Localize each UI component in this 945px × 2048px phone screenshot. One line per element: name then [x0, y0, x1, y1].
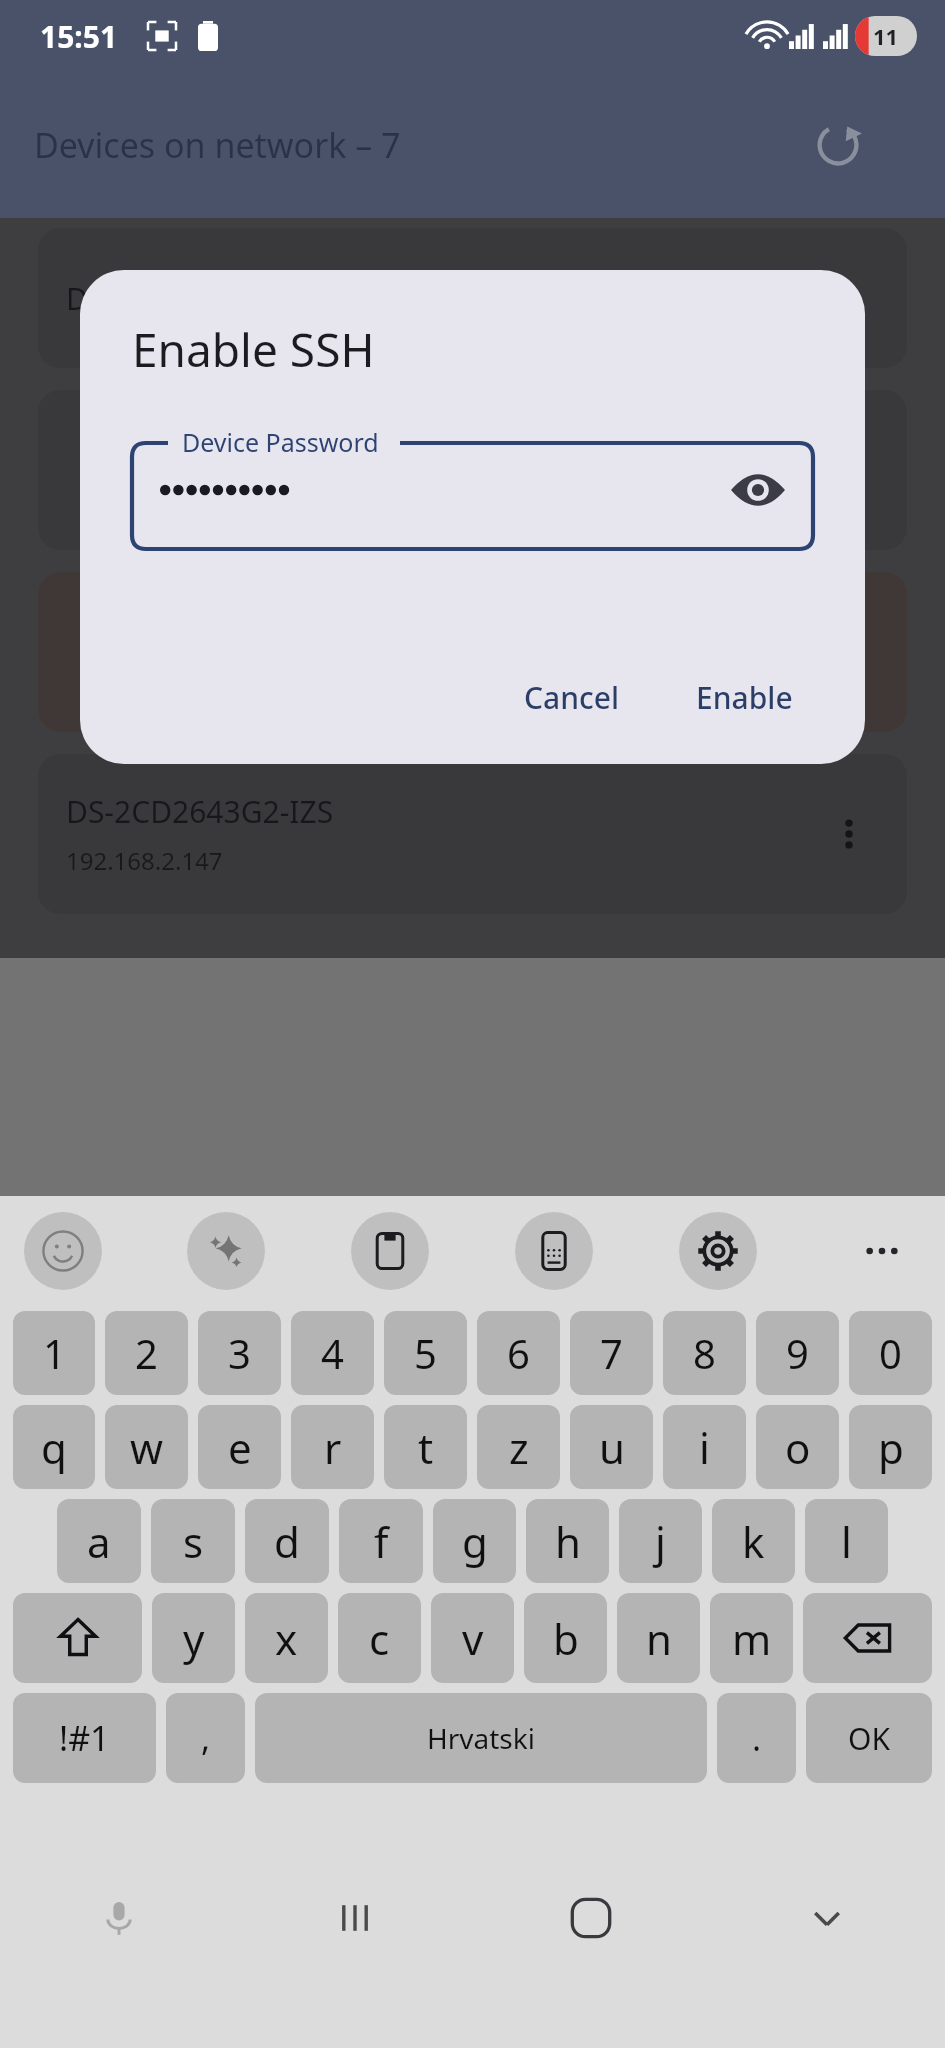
button[interactable]: l: [805, 1499, 888, 1583]
button[interactable]: OK: [806, 1693, 932, 1783]
button[interactable]: !#1: [13, 1693, 156, 1783]
staticText: k: [742, 1513, 765, 1570]
button[interactable]: 9: [756, 1311, 839, 1395]
button[interactable]: n: [617, 1593, 700, 1683]
staticText: 15:51: [40, 16, 118, 57]
staticText: 6: [507, 1326, 530, 1380]
button[interactable]: Show password: [721, 453, 795, 527]
staticText: p: [878, 1419, 904, 1476]
staticText: z: [509, 1419, 529, 1476]
button[interactable]: Enable: [676, 665, 813, 730]
button[interactable]: w: [105, 1405, 188, 1489]
button[interactable]: d: [245, 1499, 329, 1583]
staticText: 1: [43, 1326, 66, 1380]
staticText: 8: [693, 1326, 716, 1380]
button[interactable]: v: [431, 1593, 514, 1683]
button[interactable]: Recent apps: [237, 1788, 473, 2048]
button[interactable]: m: [710, 1593, 793, 1683]
button[interactable]: More options: [819, 804, 879, 864]
button[interactable]: 0: [849, 1311, 932, 1395]
staticText: q: [41, 1419, 67, 1476]
staticText: t: [418, 1419, 434, 1476]
button[interactable]: 5: [384, 1311, 467, 1395]
staticText: s: [183, 1513, 204, 1570]
button[interactable]: k: [712, 1499, 795, 1583]
button[interactable]: r: [291, 1405, 374, 1489]
button[interactable]: Home: [473, 1788, 709, 2048]
button[interactable]: e: [198, 1405, 281, 1489]
button[interactable]: b: [524, 1593, 607, 1683]
button[interactable]: Key: [803, 1593, 932, 1683]
button[interactable]: g: [433, 1499, 516, 1583]
staticText: o: [785, 1419, 811, 1476]
button[interactable]: p: [849, 1405, 932, 1489]
button[interactable]: Keyboard tool: [24, 1212, 102, 1290]
button[interactable]: c: [338, 1593, 421, 1683]
button[interactable]: t: [384, 1405, 467, 1489]
button[interactable]: Keyboard tool: [351, 1212, 429, 1290]
button[interactable]: .: [717, 1693, 796, 1783]
button[interactable]: h: [526, 1499, 609, 1583]
button[interactable]: u: [570, 1405, 653, 1489]
staticText: .: [752, 1715, 762, 1761]
button[interactable]: i: [663, 1405, 746, 1489]
button[interactable]: j: [619, 1499, 702, 1583]
staticText: d: [274, 1513, 300, 1570]
button[interactable]: 1: [13, 1311, 95, 1395]
button[interactable]: o: [756, 1405, 839, 1489]
button[interactable]: 8: [663, 1311, 746, 1395]
button[interactable]: 6: [477, 1311, 560, 1395]
staticText: !#1: [59, 1715, 110, 1761]
staticText: Enable SSH: [132, 318, 375, 381]
staticText: DS-2CD2643G2-IZS: [66, 791, 334, 832]
staticText: Hrvatski: [427, 1719, 535, 1757]
staticText: Enable: [696, 677, 793, 718]
button[interactable]: ,: [166, 1693, 245, 1783]
button[interactable]: Cancel: [504, 665, 640, 730]
staticText: ,: [201, 1715, 211, 1761]
button[interactable]: 7: [570, 1311, 653, 1395]
button[interactable]: x: [245, 1593, 328, 1683]
staticText: OK: [848, 1718, 890, 1759]
staticText: v: [462, 1610, 484, 1667]
button[interactable]: Voice input: [0, 1788, 237, 2048]
button[interactable]: z: [477, 1405, 560, 1489]
button[interactable]: [38, 572, 907, 732]
staticText: a: [87, 1513, 111, 1570]
button[interactable]: 4: [291, 1311, 374, 1395]
staticText: g: [462, 1513, 488, 1570]
button[interactable]: DS-7600NXI-I2/S: [38, 228, 907, 368]
button[interactable]: Hrvatski: [255, 1693, 707, 1783]
button[interactable]: y: [152, 1593, 235, 1683]
staticText: 4: [321, 1326, 344, 1380]
staticText: y: [183, 1610, 205, 1667]
button[interactable]: Hide keyboard: [709, 1788, 945, 2048]
staticText: 9: [786, 1326, 809, 1380]
staticText: 0: [879, 1326, 902, 1380]
staticText: 192.168.2.147: [66, 844, 223, 877]
staticText: DS-7600NXI-I2/S: [66, 278, 298, 319]
button[interactable]: Keyboard tool: [679, 1212, 757, 1290]
staticText: l: [841, 1513, 852, 1570]
button[interactable]: Key: [13, 1593, 142, 1683]
staticText: u: [599, 1419, 625, 1476]
staticText: x: [275, 1610, 298, 1667]
staticText: Devices on network – 7: [34, 122, 401, 168]
staticText: 3: [228, 1326, 251, 1380]
button[interactable]: 3: [198, 1311, 281, 1395]
button[interactable]: Keyboard tool: [187, 1212, 265, 1290]
button[interactable]: s: [151, 1499, 235, 1583]
button[interactable]: q: [13, 1405, 95, 1489]
staticText: 7: [600, 1326, 623, 1380]
button[interactable]: f: [339, 1499, 423, 1583]
button[interactable]: Refresh: [803, 110, 873, 180]
button[interactable]: 2: [105, 1311, 188, 1395]
staticText: 5: [414, 1326, 437, 1380]
button[interactable]: [38, 390, 907, 550]
button[interactable]: a: [57, 1499, 141, 1583]
button[interactable]: Keyboard tool: [515, 1212, 593, 1290]
staticText: Cancel: [524, 677, 620, 718]
staticText: m: [732, 1610, 772, 1667]
button[interactable]: DS-2CD2643G2-IZS: [38, 754, 907, 914]
button[interactable]: More: [843, 1212, 921, 1290]
